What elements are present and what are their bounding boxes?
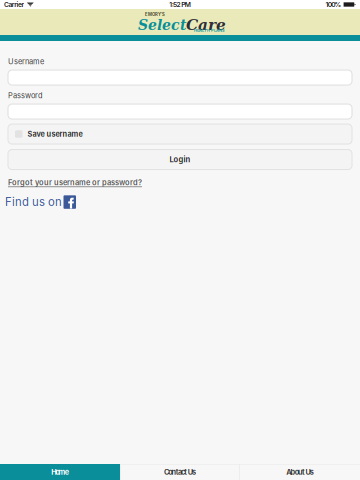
button[interactable]: Contact Us [120,464,240,480]
staticText: 100% [325,0,342,9]
button[interactable]: Forgot your username or password? [0,170,360,187]
staticText: Select [138,17,186,33]
staticText: Care [186,15,226,33]
staticText: EMORY'S [145,12,165,17]
staticText: Login [169,155,190,164]
button[interactable]: Home [0,464,120,480]
staticText: Save username [27,130,82,138]
staticText: Find us on [5,195,62,209]
staticText: Carrier [4,0,24,9]
button[interactable]: About Us [240,464,360,480]
button[interactable]: Login [0,150,360,170]
staticText: Password [8,91,43,100]
staticText: About Us [286,468,314,476]
button[interactable]: Save username [0,124,360,144]
button[interactable]: Find us on [0,187,360,209]
staticText: Username [8,57,44,66]
staticText: HEALTH PLANS [194,28,225,33]
staticText: 1:52 PM [169,0,191,9]
staticText: Home [51,468,69,476]
staticText: Contact Us [164,468,196,476]
staticText: Forgot your username or password? [8,178,142,187]
